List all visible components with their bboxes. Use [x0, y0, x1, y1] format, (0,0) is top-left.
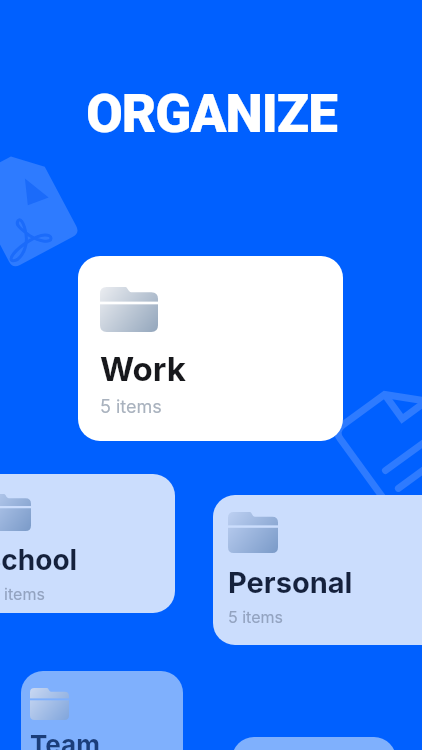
staticText: 10 items — [0, 584, 45, 603]
staticText: Work — [100, 349, 186, 389]
staticText: ORGANIZE — [86, 83, 337, 145]
staticText: School — [0, 543, 78, 577]
button[interactable] — [232, 737, 396, 750]
staticText: Personal — [228, 565, 353, 600]
button[interactable]: Team — [21, 671, 183, 750]
staticText: 5 items — [228, 607, 283, 626]
staticText: Team — [30, 729, 100, 750]
staticText: 5 items — [100, 396, 162, 418]
button[interactable]: School — [0, 474, 175, 613]
button[interactable]: Personal — [213, 495, 422, 645]
button[interactable]: Work — [78, 256, 343, 441]
